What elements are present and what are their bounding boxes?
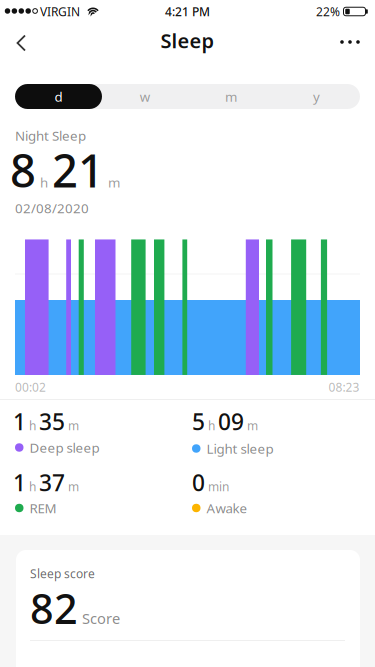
staticText: m (225, 88, 237, 105)
staticText: h (29, 479, 36, 495)
staticText: 09 (218, 406, 244, 436)
staticText: 22% (316, 3, 340, 19)
staticText: Sleep score (30, 565, 95, 581)
staticText: h (208, 418, 215, 434)
staticText: 0 (192, 467, 205, 497)
staticText: m (108, 174, 120, 191)
staticText: m (68, 418, 79, 434)
staticText: 5 (192, 406, 205, 436)
staticText: 82 (30, 581, 78, 635)
staticText: VIRGIN (40, 3, 80, 19)
button[interactable]: m (188, 84, 274, 109)
staticText: Light sleep (206, 440, 273, 457)
staticText: min (208, 479, 229, 495)
staticText: y (313, 88, 320, 105)
staticText: 8 (10, 140, 36, 200)
staticText: 02/08/2020 (15, 199, 89, 217)
staticText: 21 (52, 140, 104, 200)
staticText: h (40, 174, 48, 191)
staticText: 1 (13, 467, 26, 497)
staticText: 08:23 (328, 379, 359, 395)
button[interactable]: More (333, 30, 367, 54)
button[interactable]: d (15, 84, 102, 109)
staticText: h (29, 418, 36, 434)
staticText: 4:21 PM (165, 3, 210, 19)
staticText: 1 (13, 406, 26, 436)
staticText: REM (29, 499, 56, 517)
button[interactable]: y (273, 84, 359, 109)
staticText: d (54, 88, 62, 105)
button[interactable]: Back (10, 31, 34, 55)
staticText: Deep sleep (29, 439, 99, 456)
button[interactable]: w (102, 84, 188, 109)
button[interactable]: Sleep score (16, 550, 360, 667)
staticText: 37 (39, 467, 65, 497)
staticText: 00:02 (15, 379, 46, 395)
staticText: Night Sleep (15, 127, 86, 144)
staticText: Sleep (160, 27, 214, 54)
staticText: Score (82, 609, 120, 628)
staticText: 35 (39, 406, 65, 436)
staticText: m (68, 479, 79, 495)
staticText: m (247, 418, 258, 434)
staticText: Awake (206, 499, 247, 517)
staticText: w (140, 88, 150, 105)
